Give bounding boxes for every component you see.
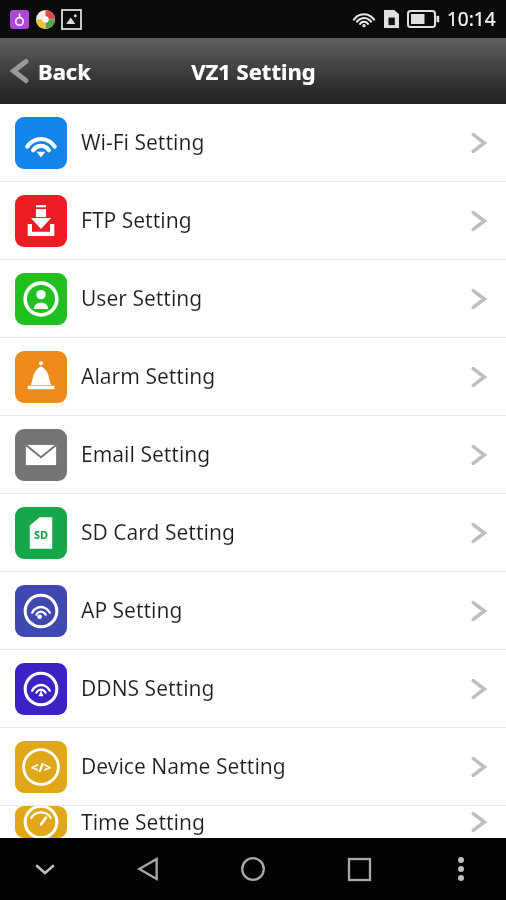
staticText: Alarm Setting [81, 362, 470, 391]
staticText: User Setting [81, 284, 470, 313]
button[interactable]: AP Setting [0, 572, 506, 649]
staticText: Wi-Fi Setting [81, 128, 470, 157]
staticText: VZ1 Setting [191, 56, 316, 86]
button[interactable]: Home [227, 843, 279, 895]
button[interactable]: Back [0, 47, 105, 95]
button[interactable]: FTP Setting [0, 182, 506, 259]
button[interactable]: More options [438, 846, 484, 892]
staticText: Back [38, 56, 91, 86]
staticText: </> [31, 758, 52, 776]
staticText: Device Name Setting [81, 752, 470, 781]
staticText: SD [34, 527, 49, 542]
button[interactable]: Back [122, 843, 174, 895]
button[interactable]: Time Setting [0, 806, 506, 838]
button[interactable]: Recent apps [333, 843, 385, 895]
staticText: 10:14 [447, 6, 496, 32]
button[interactable]: </> [0, 728, 506, 805]
staticText: AP Setting [81, 596, 470, 625]
staticText: Email Setting [81, 440, 470, 469]
button[interactable]: User Setting [0, 260, 506, 337]
button[interactable]: Wi-Fi Setting [0, 104, 506, 181]
staticText: FTP Setting [81, 206, 470, 235]
button[interactable]: SD [0, 494, 506, 571]
button[interactable]: DDNS Setting [0, 650, 506, 727]
button[interactable]: Email Setting [0, 416, 506, 493]
staticText: DDNS Setting [81, 674, 470, 703]
staticText: Time Setting [81, 808, 470, 837]
button[interactable]: Alarm Setting [0, 338, 506, 415]
staticText: SD Card Setting [81, 518, 470, 547]
button[interactable]: Hide keyboard [22, 846, 68, 892]
